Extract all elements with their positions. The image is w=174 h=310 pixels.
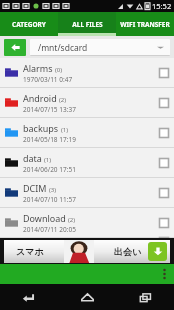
staticText: 2014/07/11 20:05 <box>23 225 76 234</box>
staticText: backups <box>23 122 59 134</box>
button[interactable]: Recent apps <box>116 284 174 310</box>
button[interactable]: More options <box>158 265 170 283</box>
staticText: 出会い <box>114 246 142 257</box>
staticText: Download <box>23 212 66 224</box>
staticText: /mnt/sdcard <box>38 42 88 54</box>
button[interactable]: Select data <box>159 158 169 168</box>
button[interactable]: Select Android <box>159 98 169 108</box>
staticText: data <box>23 152 42 164</box>
staticText: 2014/05/18 17:19 <box>23 135 76 144</box>
button[interactable]: Select Download <box>159 218 169 228</box>
staticText: (1) <box>61 126 69 134</box>
staticText: (2) <box>59 96 67 104</box>
button[interactable]: ALL FILES <box>58 12 116 36</box>
button[interactable]: スマホ <box>0 238 174 264</box>
button[interactable]: Alarms <box>0 58 174 88</box>
staticText: スマホ <box>16 246 44 257</box>
staticText: DCIM <box>23 182 47 194</box>
staticText: 2014/07/15 13:37 <box>23 105 76 114</box>
staticText: CATEGORY <box>12 20 46 29</box>
button[interactable]: data <box>0 148 174 178</box>
staticText: 2014/07/10 11:57 <box>23 195 76 204</box>
button[interactable]: Download <box>148 242 167 261</box>
button[interactable]: Select DCIM <box>159 188 169 198</box>
staticText: (2) <box>68 216 76 224</box>
staticText: (0) <box>55 66 63 74</box>
staticText: WIFI TRANSFER <box>120 20 170 29</box>
button[interactable]: backups <box>0 118 174 148</box>
button[interactable]: Home <box>58 284 116 310</box>
staticText: Alarms <box>23 62 53 74</box>
staticText: ALL FILES <box>72 20 103 29</box>
button[interactable]: Back <box>0 284 58 310</box>
staticText: Android <box>23 92 57 104</box>
button[interactable]: /mnt/sdcard <box>30 39 170 56</box>
staticText: 2014/06/20 17:51 <box>23 165 76 174</box>
button[interactable]: Download <box>0 208 174 238</box>
staticText: (1) <box>44 156 52 164</box>
staticText: 1970/03/11 0:47 <box>23 75 73 84</box>
button[interactable]: Android <box>0 88 174 118</box>
button[interactable]: Back <box>4 39 26 56</box>
button[interactable]: CATEGORY <box>0 12 58 36</box>
button[interactable]: WIFI TRANSFER <box>116 12 174 36</box>
button[interactable]: Select backups <box>159 128 169 138</box>
staticText: 15:52 <box>152 1 172 11</box>
staticText: (3) <box>49 186 57 194</box>
button[interactable]: Select Alarms <box>159 68 169 78</box>
button[interactable]: DCIM <box>0 178 174 208</box>
